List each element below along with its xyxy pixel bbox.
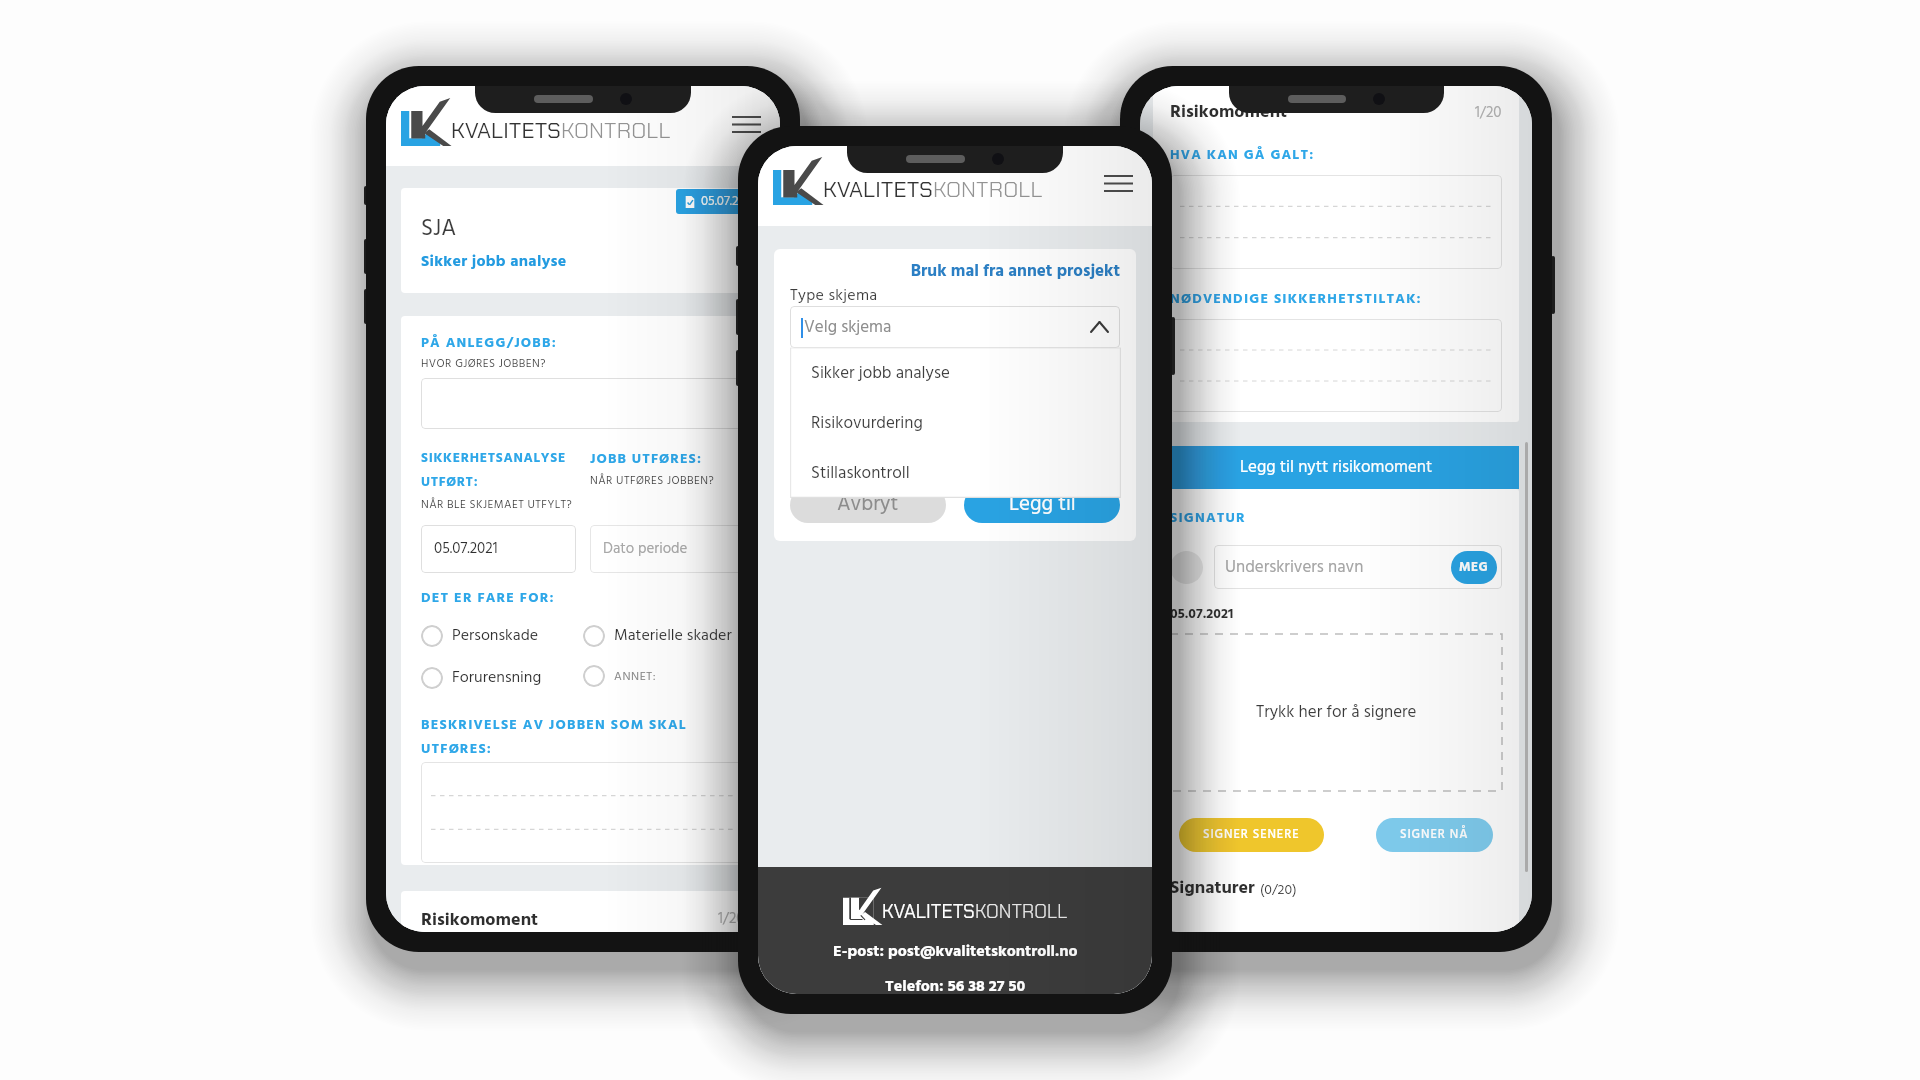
button[interactable] xyxy=(1170,319,1502,412)
staticText: PÅ ANLEGG/JOBB: xyxy=(421,332,557,354)
button[interactable]: Velg skjema xyxy=(790,306,1120,348)
button[interactable]: MEG xyxy=(1451,551,1497,584)
staticText: Materielle skader xyxy=(614,623,732,649)
staticText: Sikker jobb analyse xyxy=(421,249,567,275)
staticText: Velg skjema xyxy=(804,314,892,341)
button[interactable]: Menu xyxy=(1100,165,1136,201)
button[interactable]: SIGNER SENERE xyxy=(1179,818,1324,852)
staticText: BESKRIVELSE AV JOBBEN SOM SKAL UTFØRES: xyxy=(421,714,745,760)
staticText: Legg til xyxy=(1009,488,1076,522)
staticText: HVOR GJØRES JOBBEN? xyxy=(421,355,546,373)
button[interactable] xyxy=(421,378,745,429)
staticText: Stillaskontroll xyxy=(811,460,910,487)
staticText: Avbryt xyxy=(837,488,899,522)
staticText: SJA xyxy=(421,211,457,248)
button[interactable]: Stillaskontroll xyxy=(790,448,1121,498)
button[interactable] xyxy=(421,762,745,863)
staticText: Risikovurdering xyxy=(811,410,923,437)
staticText: 05.07.2021 xyxy=(701,191,757,212)
staticText: E-post: post@kvalitetskontroll.no xyxy=(833,939,1078,965)
staticText: KONTROLL xyxy=(561,116,671,145)
staticText: KVALITETS xyxy=(451,116,561,145)
staticText: DET ER FARE FOR: xyxy=(421,587,555,609)
staticText: Dato periode xyxy=(603,537,688,561)
staticText: Signaturer xyxy=(1170,874,1255,903)
button[interactable]: Forurensning xyxy=(421,665,583,691)
staticText: KONTROLL xyxy=(975,899,1068,924)
button[interactable]: Bruk mal fra annet prosjekt xyxy=(790,258,1120,283)
staticText: 05.07.2021 xyxy=(1170,603,1234,625)
button[interactable] xyxy=(1170,175,1502,269)
staticText: SIGNER SENERE xyxy=(1203,825,1300,845)
button[interactable]: Risikomoment xyxy=(401,891,765,932)
button[interactable]: Underskrivers navn xyxy=(1214,545,1502,589)
button[interactable]: Legg til nytt risikomoment xyxy=(1153,446,1519,489)
staticText: Telefon: 56 38 27 50 xyxy=(885,974,1026,994)
staticText: Underskrivers navn xyxy=(1225,554,1364,581)
staticText: Risikomoment xyxy=(421,906,539,932)
button[interactable]: Personskade xyxy=(421,623,583,649)
staticText: KONTROLL xyxy=(933,175,1043,204)
button[interactable]: Menu xyxy=(728,106,764,142)
staticText: Personskade xyxy=(452,623,539,649)
staticText: Legg til nytt risikomoment xyxy=(1240,454,1433,481)
staticText: Forurensning xyxy=(452,665,542,691)
button[interactable]: ANNET: xyxy=(583,665,745,687)
staticText: JOBB UTFØRES: xyxy=(590,448,702,470)
button[interactable]: SIGNER NÅ xyxy=(1376,818,1493,852)
staticText: MEG xyxy=(1459,557,1489,578)
staticText: 05.07.2021 xyxy=(434,537,498,561)
button[interactable]: Materielle skader xyxy=(583,623,745,649)
button[interactable]: Dato periode xyxy=(590,525,745,573)
staticText: KVALITETS xyxy=(882,899,975,924)
staticText: (0/20) xyxy=(1260,879,1297,901)
staticText: ANNET: xyxy=(614,667,657,686)
button[interactable]: 05.07.2021 xyxy=(421,525,576,573)
staticText: SIGNATUR xyxy=(1170,507,1246,529)
staticText: SIGNER NÅ xyxy=(1400,825,1469,845)
button[interactable]: Sikker jobb analyse xyxy=(790,348,1121,398)
button[interactable]: 05.07.2021 xyxy=(401,188,765,293)
staticText: NØDVENDIGE SIKKERHETSTILTAK: xyxy=(1170,288,1422,310)
staticText: Risikomoment xyxy=(1170,98,1288,127)
staticText: Trykk her for å signere xyxy=(1256,699,1417,726)
staticText: Type skjema xyxy=(790,283,878,306)
staticText: Sikker jobb analyse xyxy=(811,360,950,387)
staticText: 1/20 xyxy=(718,907,745,931)
staticText: HVA KAN GÅ GALT: xyxy=(1170,144,1315,166)
staticText: NÅR BLE SKJEMAET UTFYLT? xyxy=(421,496,573,514)
staticText: NÅR UTFØRES JOBBEN? xyxy=(590,472,715,490)
staticText: SIKKERHETSANALYSE UTFØRT: xyxy=(421,448,566,493)
staticText: Bruk mal fra annet prosjekt xyxy=(790,258,1120,283)
staticText: 1/20 xyxy=(1475,101,1502,125)
staticText: KVALITETS xyxy=(823,175,933,204)
button[interactable]: Avbryt xyxy=(790,487,946,523)
button[interactable]: Risikovurdering xyxy=(790,398,1121,448)
button[interactable]: Legg til xyxy=(964,487,1120,523)
